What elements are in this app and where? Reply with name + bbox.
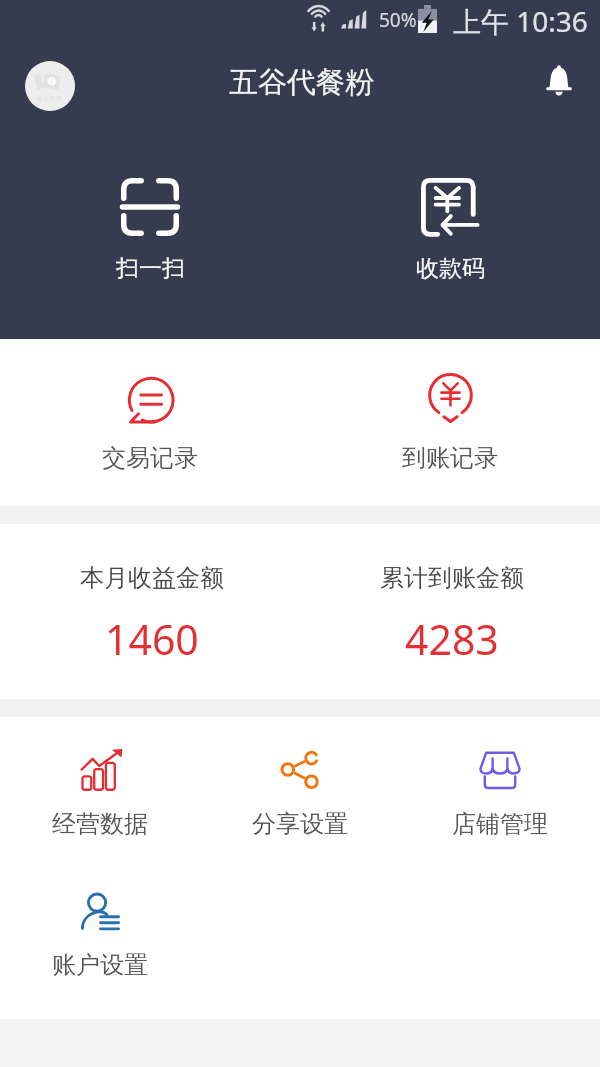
staticText: 累计到账金额 [380,563,524,593]
staticText: 交易记录 [102,443,198,473]
staticText: 店铺管理 [452,809,548,839]
button[interactable]: 累计到账金额 [300,524,600,699]
staticText: 扫一扫 [116,254,185,283]
button[interactable]: 收款码 [300,132,600,339]
staticText: 收款码 [416,254,485,283]
button[interactable]: 交易记录 [0,339,300,506]
button[interactable]: Shop avatar [25,61,75,111]
staticText: 4283 [405,611,499,667]
button[interactable]: 本月收益金额 [0,524,300,699]
staticText: 到账记录 [402,443,498,473]
staticText: 分享设置 [252,809,348,839]
button[interactable]: 账户设置 [0,861,200,1005]
staticText: 50% [379,7,417,33]
staticText: 五谷代餐粉 [229,64,374,101]
button[interactable]: 到账记录 [300,339,600,506]
button[interactable]: 扫一扫 [0,132,300,339]
staticText: 1460 [105,611,199,667]
button[interactable]: Notifications [535,57,583,105]
button[interactable]: 店铺管理 [400,717,600,861]
button[interactable]: 分享设置 [200,717,400,861]
staticText: 账户设置 [52,950,148,980]
staticText: 经营数据 [52,809,148,839]
staticText: 上午 10:36 [453,2,588,40]
staticText: 本月收益金额 [80,563,224,593]
button[interactable]: 经营数据 [0,717,200,861]
